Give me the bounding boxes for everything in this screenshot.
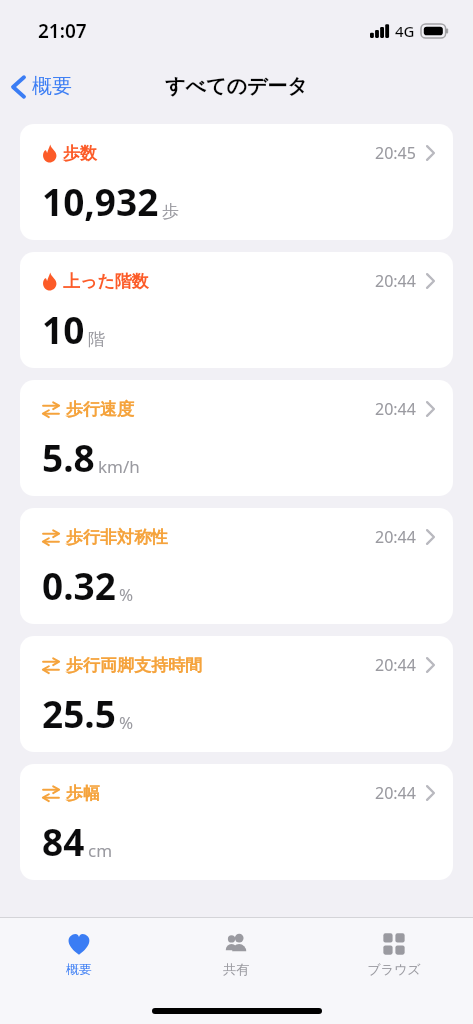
staticText: ブラウズ	[367, 961, 421, 977]
button[interactable]: 歩行両脚支持時間	[20, 636, 453, 752]
staticText: 概要	[66, 961, 92, 977]
staticText: 歩	[162, 201, 179, 222]
staticText: 20:44	[375, 398, 416, 420]
staticText: 20:44	[375, 270, 416, 292]
button[interactable]: 歩行非対称性	[20, 508, 453, 624]
staticText: 10	[42, 304, 85, 354]
button[interactable]: 歩幅	[20, 764, 453, 880]
button[interactable]: 概要	[0, 926, 157, 981]
button[interactable]: 概要	[0, 68, 82, 105]
staticText: 0.32	[42, 560, 116, 610]
staticText: 歩行両脚支持時間	[66, 655, 202, 676]
staticText: 20:45	[375, 142, 416, 164]
button[interactable]: 歩行速度	[20, 380, 453, 496]
staticText: 20:44	[375, 526, 416, 548]
staticText: %	[119, 583, 134, 606]
staticText: 上った階数	[63, 271, 149, 292]
staticText: 概要	[32, 74, 72, 99]
button[interactable]: 共有	[157, 926, 315, 981]
staticText: 20:44	[375, 654, 416, 676]
button[interactable]: ブラウズ	[315, 926, 473, 981]
staticText: 4G	[395, 21, 415, 41]
staticText: 20:44	[375, 782, 416, 804]
staticText: 歩幅	[66, 783, 100, 804]
staticText: cm	[88, 839, 113, 862]
staticText: km/h	[98, 455, 140, 478]
staticText: %	[119, 711, 134, 734]
staticText: 歩行速度	[66, 399, 134, 420]
staticText: 10,932	[42, 176, 159, 226]
staticText: 歩数	[63, 143, 97, 164]
staticText: 25.5	[42, 688, 116, 738]
staticText: 階	[88, 329, 105, 350]
staticText: 21:07	[38, 18, 87, 44]
staticText: 84	[42, 816, 85, 866]
button[interactable]: 歩数	[20, 124, 453, 240]
staticText: 5.8	[42, 432, 95, 482]
staticText: 歩行非対称性	[66, 527, 168, 548]
staticText: すべてのデータ	[165, 74, 308, 99]
staticText: 共有	[223, 961, 249, 977]
button[interactable]: 上った階数	[20, 252, 453, 368]
